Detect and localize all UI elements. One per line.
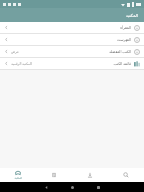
button[interactable]: Back: [42, 183, 50, 191]
other: Info: [134, 49, 140, 55]
button[interactable]: Tab: [72, 168, 108, 182]
staticText: المكتبة: [14, 177, 22, 180]
staticText: الفهرست: [116, 38, 131, 42]
button[interactable]: Home: [68, 183, 76, 191]
button[interactable]: Expand: [0, 34, 144, 45]
other: Expand: [4, 61, 9, 66]
button[interactable]: Expand: [0, 58, 144, 69]
staticText: قائمة الكتب: [113, 61, 131, 66]
other: Info: [134, 25, 140, 31]
button[interactable]: Recents: [94, 183, 102, 191]
button[interactable]: Expand: [0, 46, 144, 57]
other: Expand: [4, 49, 9, 54]
other: Expand: [4, 37, 9, 42]
button[interactable]: Expand: [0, 22, 144, 33]
other: Expand: [4, 25, 9, 30]
other: Library: [134, 61, 140, 67]
button[interactable]: Tab: [36, 168, 72, 182]
staticText: الكتب المفضلة: [109, 49, 131, 54]
button[interactable]: المكتبة: [0, 168, 36, 182]
button[interactable]: Tab: [108, 168, 144, 182]
staticText: المكتبة الرقمية: [11, 61, 32, 66]
other: Info: [134, 37, 140, 43]
staticText: المكتبة: [126, 13, 138, 18]
staticText: عرض: [11, 50, 19, 54]
staticText: المقرأة: [120, 26, 131, 30]
